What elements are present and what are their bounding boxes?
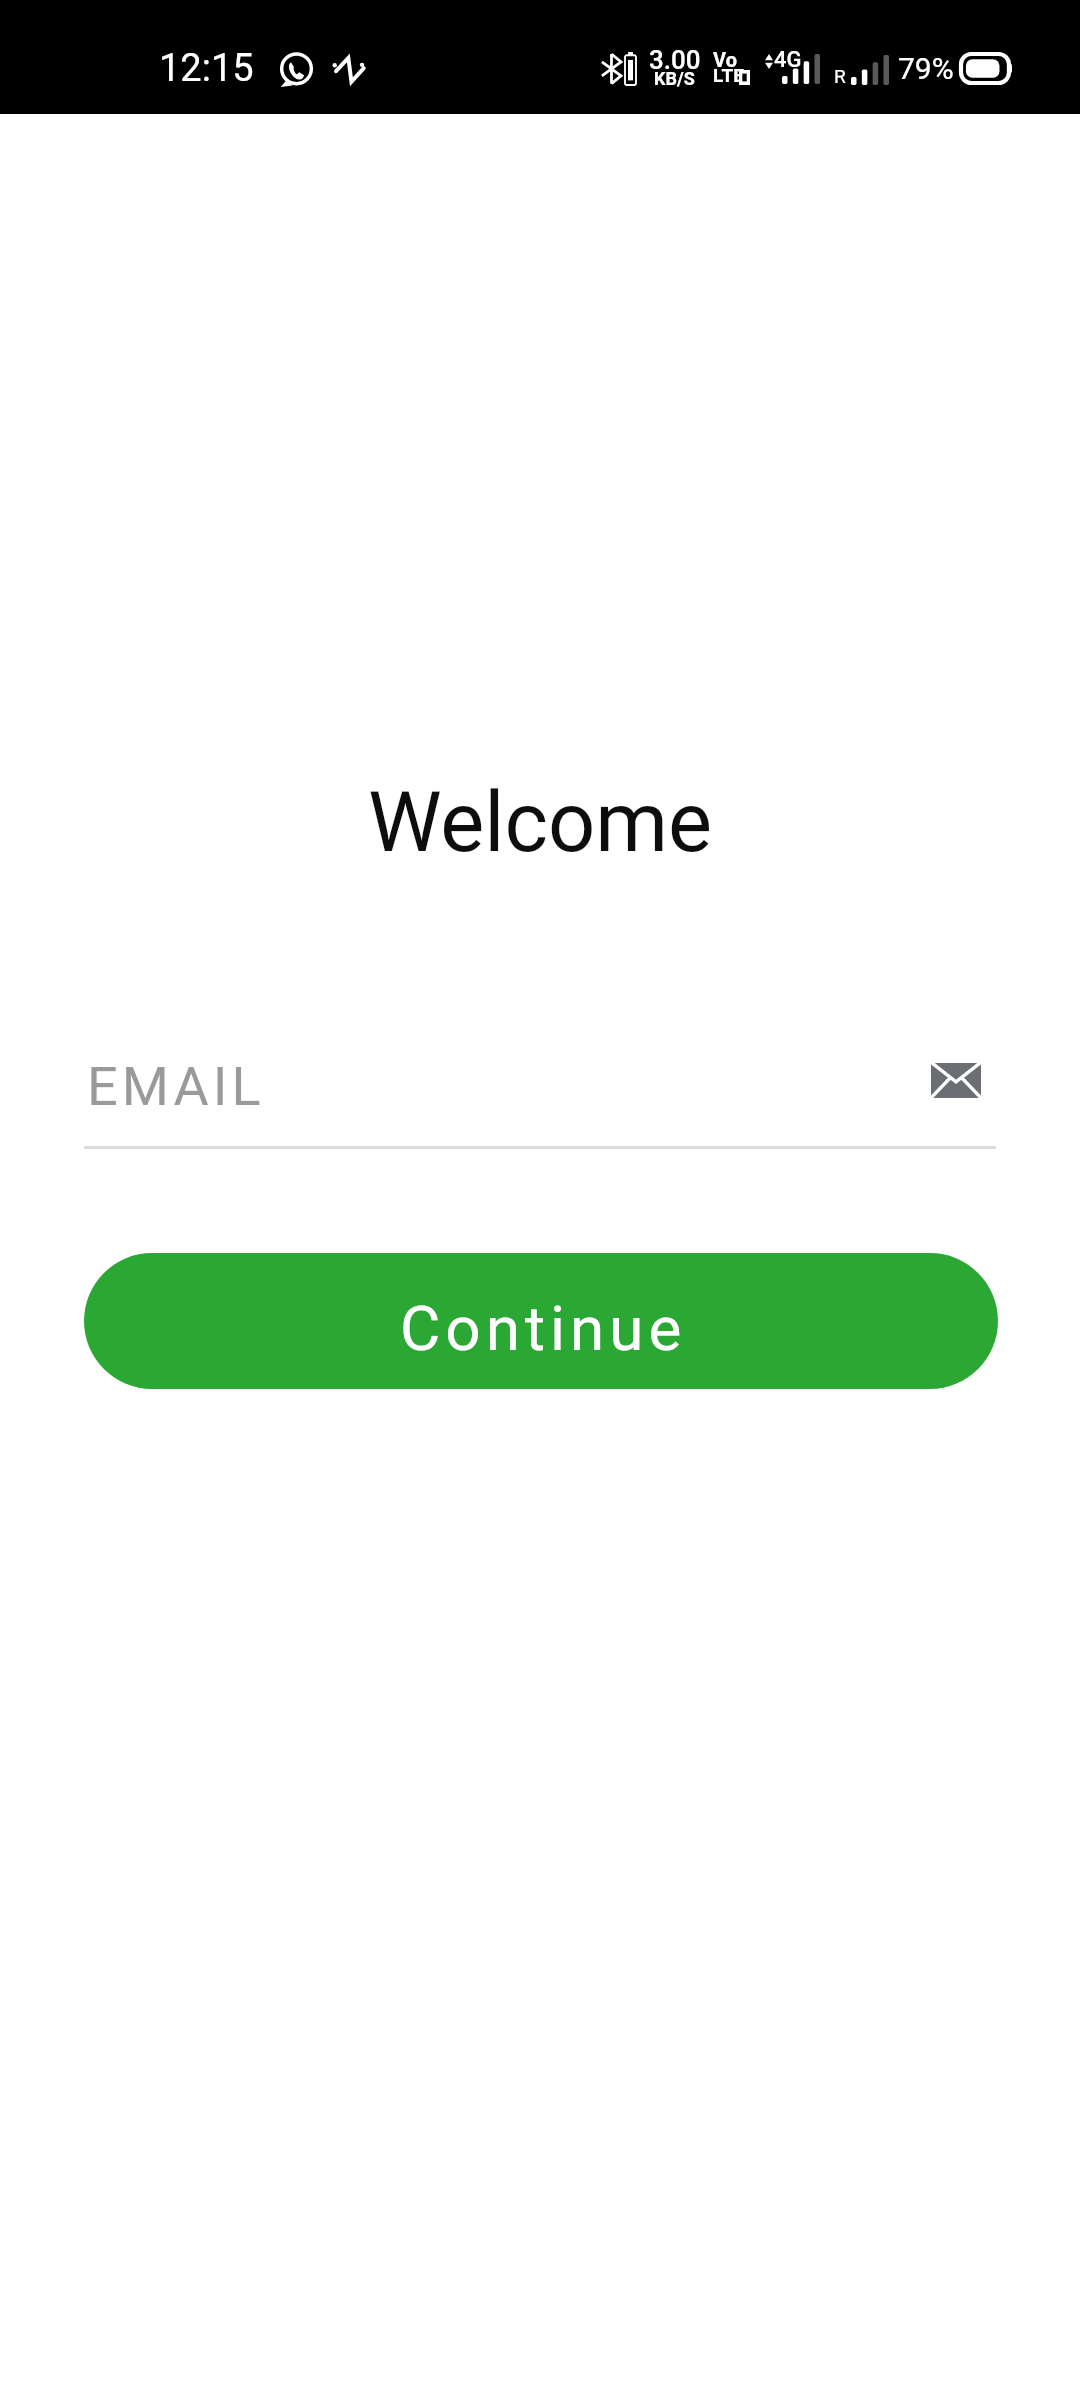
button[interactable]: Email: [931, 1063, 981, 1098]
staticText: KB/S: [654, 68, 695, 89]
staticText: 4G: [774, 47, 802, 73]
staticText: Continue: [400, 1292, 687, 1365]
staticText: R: [834, 65, 846, 87]
staticText: 79%: [898, 51, 954, 86]
staticText: LTE: [713, 64, 744, 86]
staticText: 3.00: [649, 45, 701, 75]
staticText: EMAIL: [87, 1055, 265, 1118]
button[interactable]: Continue: [84, 1253, 998, 1389]
staticText: Vo: [713, 48, 737, 71]
staticText: 12:15: [159, 46, 254, 91]
staticText: Welcome: [0, 774, 1080, 871]
button[interactable]: EMAIL: [84, 1049, 996, 1149]
